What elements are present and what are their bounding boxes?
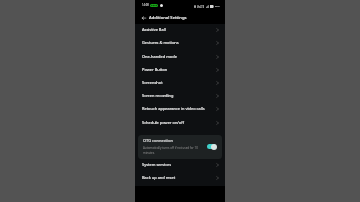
staticText: One-handed mode [142, 54, 177, 59]
button[interactable]: Screen recording [135, 89, 225, 102]
staticText: Power Button [142, 67, 168, 72]
staticText: Gestures & motions [142, 40, 179, 45]
button[interactable]: System services [135, 158, 225, 171]
button[interactable]: Schedule power on/off [135, 116, 225, 129]
staticText: Retouch appearance in video calls [142, 106, 205, 111]
button[interactable]: Back [139, 11, 149, 24]
button[interactable]: OTG connection [138, 135, 222, 159]
button[interactable]: Back up and reset [135, 171, 225, 184]
staticText: Additional Settings [149, 15, 187, 21]
staticText: Screenshot [142, 80, 163, 85]
button[interactable]: Power Button [135, 63, 225, 76]
staticText: Schedule power on/off [142, 120, 184, 125]
staticText: Screen recording [142, 93, 174, 98]
button[interactable]: OTG connection toggle [204, 142, 220, 151]
staticText: VoLTE [197, 5, 205, 8]
staticText: System services [142, 162, 172, 167]
staticText: 60% [215, 5, 220, 8]
button[interactable]: Assistive Ball [135, 23, 225, 36]
staticText: OTG connection [143, 138, 173, 143]
button[interactable]: Gestures & motions [135, 36, 225, 49]
button[interactable]: One-handed mode [135, 50, 225, 63]
staticText: Back up and reset [142, 175, 176, 180]
staticText: Automatically turns off if not used for … [143, 146, 199, 155]
staticText: Assistive Ball [142, 27, 166, 32]
button[interactable]: Retouch appearance in video calls [135, 102, 225, 115]
staticText: 14:08 [142, 3, 149, 7]
button[interactable]: Screenshot [135, 76, 225, 89]
